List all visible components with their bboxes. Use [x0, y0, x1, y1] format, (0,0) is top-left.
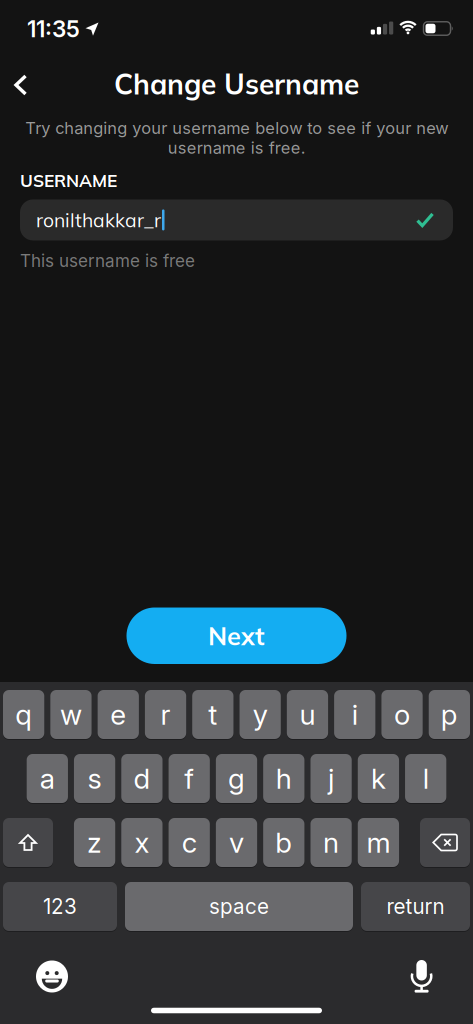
staticText: This username is free: [20, 250, 195, 271]
button[interactable]: Emoji: [36, 960, 68, 992]
button[interactable]: l: [405, 754, 446, 803]
button[interactable]: Delete: [420, 818, 470, 867]
staticText: t: [208, 698, 217, 731]
staticText: space: [209, 894, 269, 919]
staticText: y: [253, 698, 268, 731]
button[interactable]: o: [381, 690, 423, 739]
staticText: d: [133, 762, 150, 795]
staticText: k: [371, 762, 386, 795]
button[interactable]: 123: [3, 882, 117, 931]
staticText: x: [134, 826, 149, 859]
button[interactable]: n: [310, 818, 352, 867]
button[interactable]: a: [27, 754, 68, 803]
staticText: 123: [43, 894, 77, 919]
staticText: b: [275, 826, 292, 859]
button[interactable]: Dictation: [411, 960, 433, 994]
staticText: p: [441, 698, 458, 731]
staticText: ronilthakkar_r: [36, 208, 161, 232]
button[interactable]: b: [263, 818, 304, 867]
button[interactable]: q: [3, 690, 44, 739]
button[interactable]: d: [121, 754, 162, 803]
button[interactable]: w: [50, 690, 92, 739]
staticText: v: [229, 826, 244, 859]
staticText: z: [87, 826, 102, 859]
staticText: f: [184, 762, 194, 795]
staticText: r: [160, 698, 170, 731]
staticText: a: [40, 762, 55, 795]
button[interactable]: k: [358, 754, 399, 803]
button[interactable]: i: [334, 690, 375, 739]
button[interactable]: Back: [14, 74, 28, 96]
button[interactable]: s: [74, 754, 115, 803]
button[interactable]: u: [287, 690, 328, 739]
staticText: q: [15, 698, 32, 731]
button[interactable]: c: [168, 818, 210, 867]
button[interactable]: return: [361, 882, 470, 931]
staticText: Next: [208, 620, 265, 652]
button[interactable]: p: [429, 690, 470, 739]
staticText: g: [228, 762, 245, 795]
button[interactable]: m: [358, 818, 399, 867]
button[interactable]: e: [98, 690, 139, 739]
staticText: h: [276, 762, 292, 795]
button[interactable]: x: [121, 818, 162, 867]
button[interactable]: r: [145, 690, 186, 739]
button[interactable]: f: [168, 754, 210, 803]
staticText: return: [386, 894, 444, 919]
staticText: c: [182, 826, 197, 859]
button[interactable]: space: [125, 882, 353, 931]
button[interactable]: t: [192, 690, 233, 739]
button[interactable]: Next: [126, 607, 346, 664]
staticText: j: [328, 762, 334, 795]
staticText: o: [394, 698, 410, 731]
button[interactable]: h: [263, 754, 304, 803]
button[interactable]: Username: [20, 199, 453, 240]
staticText: n: [323, 826, 339, 859]
staticText: s: [88, 762, 102, 795]
button[interactable]: g: [216, 754, 257, 803]
button[interactable]: z: [74, 818, 115, 867]
staticText: i: [352, 698, 358, 731]
staticText: Try changing your username below to see …: [25, 118, 448, 158]
button[interactable]: v: [216, 818, 257, 867]
staticText: 11:35: [27, 15, 80, 43]
staticText: u: [299, 698, 315, 731]
staticText: e: [110, 698, 126, 731]
staticText: w: [60, 698, 82, 731]
button[interactable]: y: [239, 690, 281, 739]
staticText: m: [366, 826, 390, 859]
staticText: Change Username: [114, 66, 359, 101]
button[interactable]: j: [310, 754, 352, 803]
staticText: l: [423, 762, 429, 795]
button[interactable]: Shift: [3, 818, 53, 867]
staticText: USERNAME: [20, 170, 117, 191]
